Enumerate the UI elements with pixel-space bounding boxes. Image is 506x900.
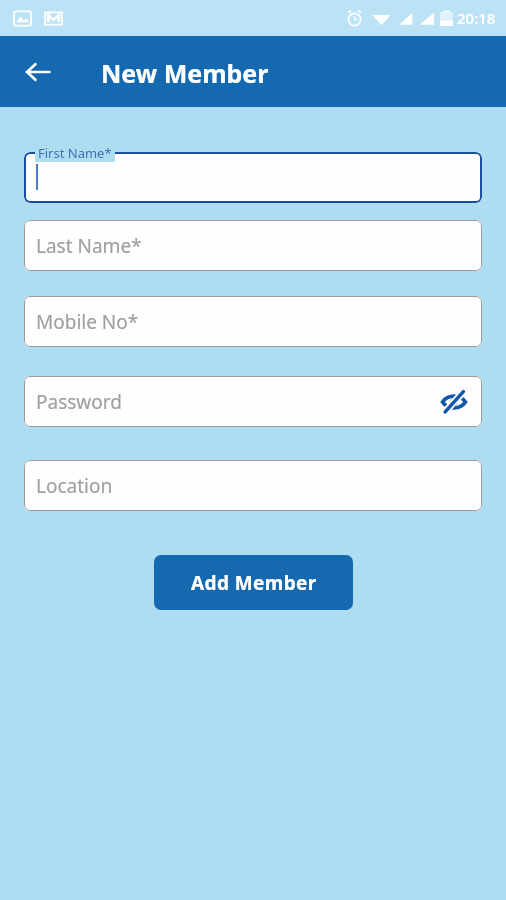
staticText: First Name* [38, 144, 112, 162]
staticText: Last Name* [36, 233, 142, 259]
staticText: Password [36, 389, 122, 415]
staticText: 20:18 [457, 8, 496, 28]
button[interactable]: Back [14, 48, 62, 96]
button[interactable]: Toggle password visibility [434, 382, 474, 422]
staticText: Location [36, 473, 113, 499]
button[interactable] [24, 152, 482, 203]
button[interactable]: Location [24, 460, 482, 511]
button[interactable]: Password [24, 376, 482, 427]
staticText: New Member [101, 56, 269, 90]
button[interactable]: Add Member [154, 555, 353, 610]
staticText: Add Member [191, 570, 317, 596]
button[interactable]: Last Name* [24, 220, 482, 271]
button[interactable]: Mobile No* [24, 296, 482, 347]
staticText: Mobile No* [36, 309, 139, 335]
